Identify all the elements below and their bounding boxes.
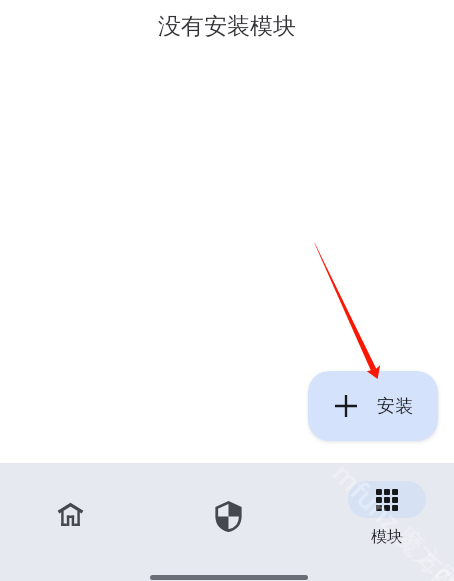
staticText: 没有安装模块 [0,12,454,41]
button[interactable]: 首页 [9,469,131,559]
button[interactable]: 安装 [308,371,438,441]
button[interactable]: 模块 [326,469,448,559]
staticText: 安装 [377,395,413,418]
staticText: 模块 [371,527,403,547]
button[interactable]: 安全 [167,469,289,559]
